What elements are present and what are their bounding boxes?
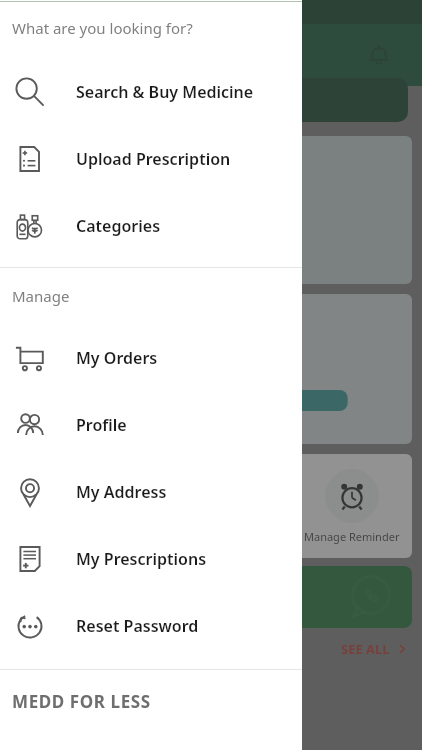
- staticText: SEE ALL: [341, 640, 390, 658]
- button[interactable]: Reset Password: [0, 592, 302, 659]
- button[interactable]: Categories: [0, 192, 302, 259]
- staticText: Categories: [76, 215, 161, 237]
- button[interactable]: My Address: [0, 458, 302, 525]
- staticText: Manage Reminder: [304, 529, 400, 544]
- staticText: Upload Prescription: [76, 148, 231, 170]
- button[interactable]: Search & Buy Medicine: [0, 58, 302, 125]
- staticText: Reset Password: [76, 615, 199, 637]
- staticText: My Orders: [76, 347, 158, 369]
- staticText: My Prescriptions: [76, 548, 207, 570]
- button[interactable]: [325, 469, 379, 523]
- staticText: What are you looking for?: [12, 18, 193, 38]
- button[interactable]: Profile: [0, 391, 302, 458]
- button[interactable]: Order on WhatsApp: [10, 566, 412, 628]
- staticText: Search & Buy Medicine: [76, 81, 254, 103]
- staticText: Profile: [76, 414, 127, 436]
- staticText: Manage: [12, 286, 70, 306]
- button[interactable]: SEE ALL: [341, 640, 408, 658]
- button[interactable]: Search for products...: [14, 78, 408, 122]
- staticText: Search for products...: [28, 91, 159, 109]
- button[interactable]: My Prescriptions: [0, 525, 302, 592]
- button[interactable]: [10, 136, 412, 284]
- staticText: MEDD FOR LESS: [12, 690, 151, 713]
- button[interactable]: My Orders: [0, 324, 302, 391]
- button[interactable]: [10, 294, 412, 444]
- staticText: My Address: [76, 481, 167, 503]
- button[interactable]: Upload Prescription: [0, 125, 302, 192]
